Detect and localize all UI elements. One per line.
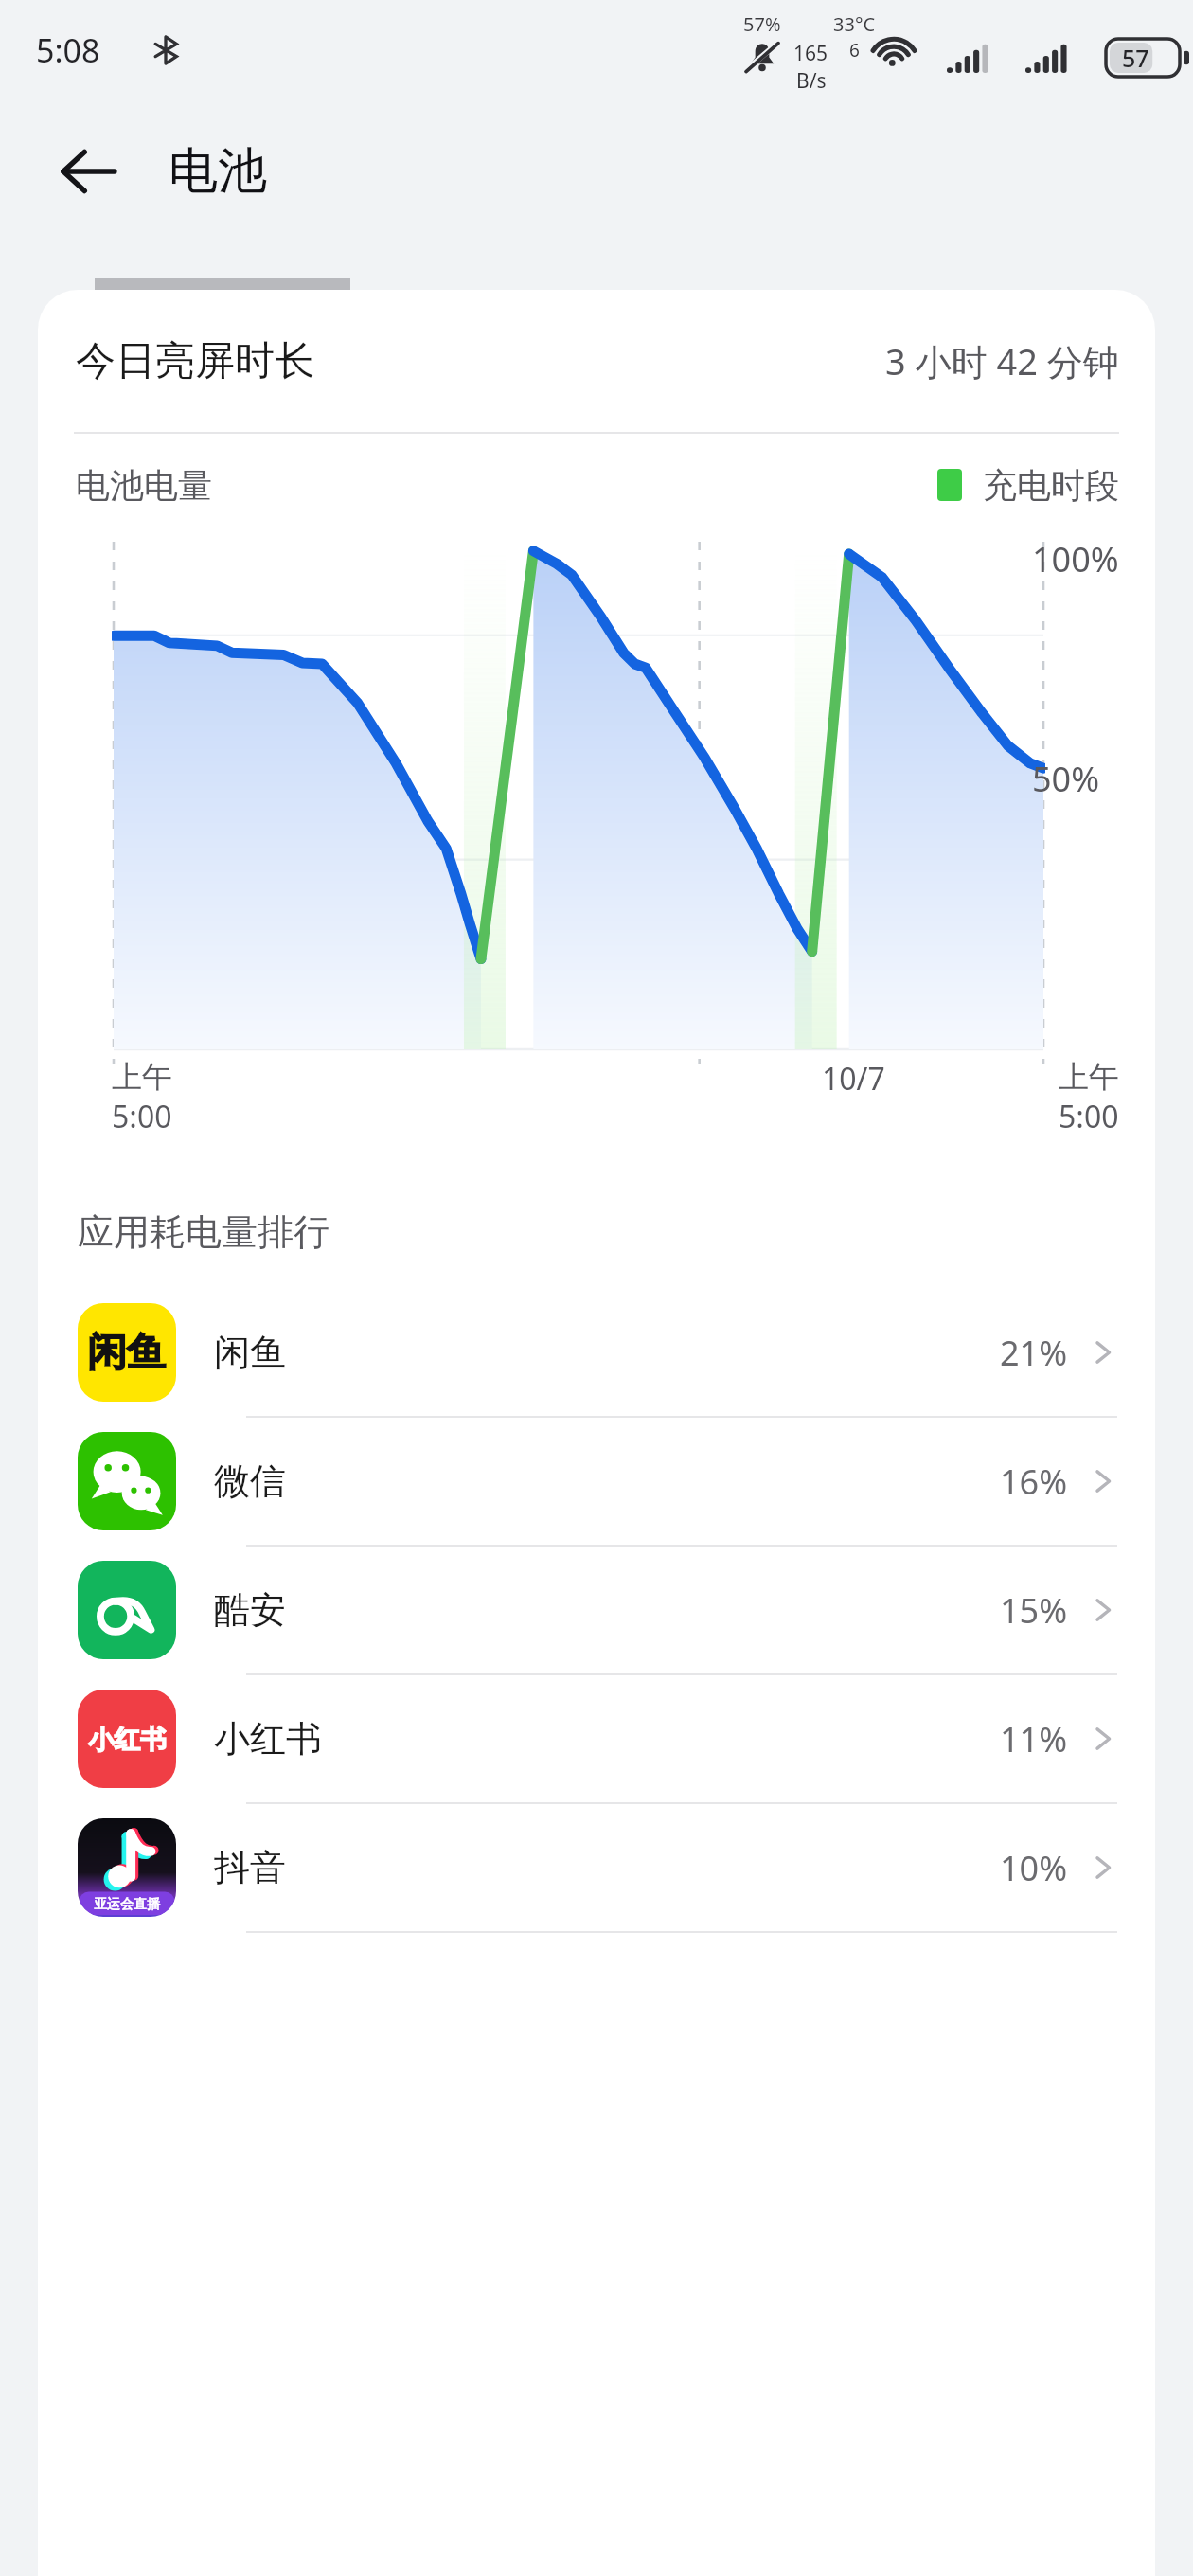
button[interactable]: Back [47, 131, 129, 212]
staticText: B/s [796, 67, 827, 95]
staticText: 小红书 [88, 1723, 167, 1756]
staticText: 21% [1000, 1330, 1068, 1376]
staticText: 3 小时 42 分钟 [885, 336, 1119, 385]
staticText: 100% [1032, 536, 1119, 582]
staticText: 亚运会直播 [94, 1895, 161, 1912]
staticText: 今日亮屏时长 [76, 336, 314, 386]
staticText: 电池电量 [76, 464, 212, 507]
staticText: 闲鱼 [214, 1330, 286, 1375]
staticText: 5:00 [1059, 1096, 1119, 1137]
staticText: 57% [743, 11, 781, 37]
staticText: 上午 [1059, 1058, 1119, 1096]
button[interactable]: 微信 [38, 1418, 1155, 1545]
staticText: 5:00 [112, 1096, 172, 1137]
button[interactable]: 今日亮屏时长 [38, 290, 1155, 432]
staticText: 闲鱼 [87, 1328, 167, 1377]
staticText: 微信 [214, 1458, 286, 1504]
button[interactable]: 闲鱼 [38, 1289, 1155, 1416]
staticText: 抖音 [214, 1845, 286, 1890]
staticText: 50% [1032, 756, 1100, 802]
staticText: 16% [1000, 1458, 1068, 1505]
staticText: 165 [793, 40, 828, 67]
staticText: 6 [849, 38, 860, 63]
staticText: 充电时段 [983, 464, 1119, 507]
staticText: 15% [1000, 1587, 1068, 1634]
staticText: 小红书 [214, 1716, 322, 1762]
staticText: 上午 [112, 1058, 172, 1096]
staticText: 5:08 [36, 28, 100, 72]
staticText: 11% [1000, 1716, 1068, 1762]
staticText: 10% [1000, 1845, 1068, 1891]
button[interactable]: 亚运会直播 [38, 1804, 1155, 1931]
staticText: 57 [1122, 42, 1149, 74]
button[interactable]: 小红书 [38, 1675, 1155, 1802]
staticText: 33°C [833, 11, 876, 37]
staticText: 酷安 [214, 1587, 286, 1633]
staticText: 应用耗电量排行 [78, 1209, 329, 1255]
button[interactable]: 酷安 [38, 1547, 1155, 1673]
staticText: 电池 [169, 140, 267, 203]
staticText: 10/7 [822, 1058, 885, 1100]
